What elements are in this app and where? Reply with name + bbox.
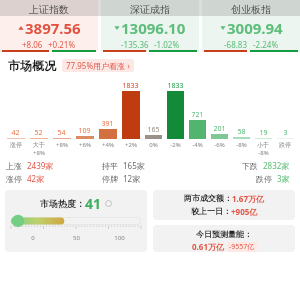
button[interactable]: 今日预测量能： — [153, 225, 295, 252]
staticText: -1.02% — [154, 39, 180, 50]
staticText: -6% — [214, 141, 225, 149]
staticText: 1833 — [122, 81, 139, 91]
staticText: 721 — [191, 110, 204, 120]
staticText: -2.24% — [253, 39, 279, 50]
staticText: -68.83 — [224, 39, 248, 50]
staticText: 54 — [57, 128, 66, 138]
staticText: 42 — [11, 128, 20, 138]
staticText: 2832家 — [263, 160, 290, 171]
button[interactable]: 上涨 — [6, 160, 102, 171]
staticText: 今日预测量能： — [196, 229, 252, 239]
staticText: -135.36 — [121, 39, 149, 50]
staticText: 市场概况 — [8, 58, 56, 73]
staticText: 0% — [149, 141, 158, 149]
staticText: 较上一日： — [191, 206, 231, 216]
staticText: 13096.10 — [121, 18, 186, 38]
staticText: 上证指数 — [29, 3, 69, 16]
staticText: 1.67万亿 — [232, 193, 264, 204]
button[interactable]: 创业板指 — [202, 0, 300, 52]
staticText: 下跌 — [242, 161, 258, 171]
staticText: 跌停 — [279, 141, 291, 149]
staticText: 3 — [283, 128, 288, 138]
staticText: 2439家 — [27, 160, 54, 171]
staticText: 391 — [101, 119, 114, 129]
staticText: 42家 — [27, 173, 45, 184]
staticText: 0 — [11, 234, 55, 242]
staticText: 165家 — [123, 160, 145, 171]
staticText: 41 — [85, 194, 102, 213]
staticText: +2% — [125, 141, 137, 149]
staticText: 3家 — [277, 173, 290, 184]
staticText: 50 — [55, 234, 98, 242]
staticText: 小于 — [257, 141, 269, 149]
staticText: 上涨 — [6, 161, 22, 171]
staticText: +8% — [56, 141, 68, 149]
staticText: 3009.94 — [227, 18, 283, 38]
staticText: 涨停 — [6, 174, 22, 184]
button[interactable]: 市场热度： — [5, 190, 147, 252]
staticText: 52 — [34, 128, 43, 138]
staticText: -8% — [258, 149, 269, 157]
staticText: 58 — [237, 127, 246, 137]
staticText: +905亿 — [231, 206, 258, 217]
staticText: 19 — [259, 128, 268, 138]
staticText: +0.21% — [48, 39, 76, 50]
staticText: -9557亿 — [229, 242, 255, 252]
staticText: 12家 — [123, 173, 141, 184]
staticText: +8% — [33, 149, 45, 157]
button[interactable]: 下跌 — [198, 160, 294, 171]
staticText: 109 — [78, 126, 91, 136]
staticText: 165 — [147, 125, 160, 135]
staticText: 深证成指 — [130, 3, 170, 16]
staticText: 0.61万亿 — [192, 241, 224, 252]
button[interactable]: 上证指数 — [0, 0, 98, 52]
staticText: 77.95%用户看涨 › — [66, 60, 130, 71]
button[interactable]: 两市成交额： — [153, 190, 295, 220]
staticText: 持平 — [102, 161, 118, 171]
staticText: 创业板指 — [231, 3, 271, 16]
staticText: -8% — [236, 141, 247, 149]
button[interactable]: 跌停 — [198, 173, 294, 184]
staticText: +8.06 — [22, 39, 43, 50]
button[interactable]: 说明 — [105, 200, 112, 207]
button[interactable]: 深证成指 — [101, 0, 199, 52]
staticText: 涨停 — [10, 141, 22, 149]
staticText: -4% — [192, 141, 203, 149]
staticText: 跌停 — [256, 174, 272, 184]
staticText: 市场热度： — [40, 198, 85, 209]
staticText: +6% — [79, 141, 91, 149]
staticText: 1833 — [167, 81, 184, 91]
staticText: 201 — [213, 124, 226, 134]
staticText: +4% — [102, 141, 114, 149]
staticText: 停牌 — [102, 174, 118, 184]
staticText: 100 — [98, 234, 141, 242]
button[interactable]: 持平 — [102, 160, 198, 171]
staticText: 大于 — [33, 141, 45, 149]
staticText: 3897.56 — [25, 18, 81, 38]
button[interactable]: 停牌 — [102, 173, 198, 184]
button[interactable]: 77.95%用户看涨 › — [62, 59, 134, 72]
staticText: 两市成交额： — [184, 193, 232, 203]
staticText: -2% — [170, 141, 181, 149]
button[interactable]: 涨停 — [6, 173, 102, 184]
